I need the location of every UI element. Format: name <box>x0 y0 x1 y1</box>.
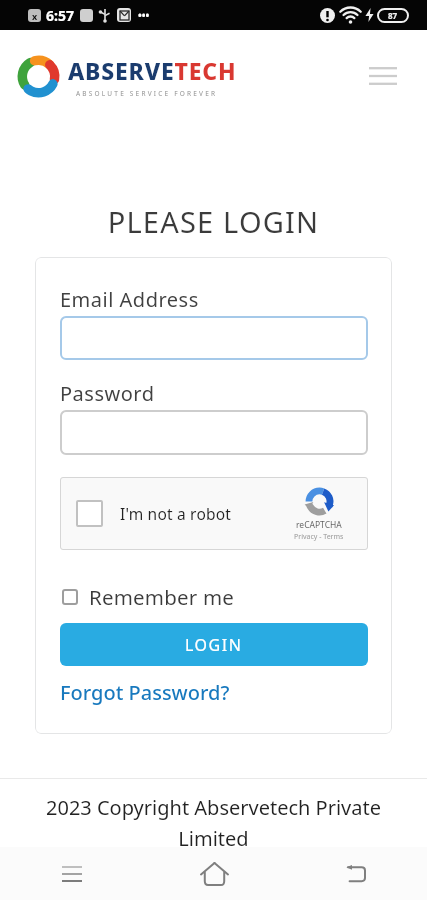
staticText: Remember me <box>89 583 235 611</box>
staticText: 2023 Copyright Abservetech Private Limit… <box>0 794 427 851</box>
staticText: LOGIN <box>185 634 243 656</box>
button[interactable] <box>60 410 368 455</box>
staticText: I'm not a robot <box>120 503 232 524</box>
button[interactable]: Forgot Password? <box>60 679 230 706</box>
staticText: Privacy - Terms <box>294 532 344 542</box>
button[interactable] <box>285 847 427 900</box>
staticText: ••• <box>138 8 150 22</box>
button[interactable] <box>60 316 368 360</box>
staticText: Email Address <box>60 286 199 313</box>
button[interactable] <box>369 67 397 85</box>
button[interactable]: Remember me <box>60 583 235 611</box>
staticText: ABSOLUTE SERVICE FOREVER <box>76 89 218 98</box>
staticText: x <box>32 10 38 22</box>
staticText: 6:57 <box>46 6 74 25</box>
staticText: ABSERVETECH <box>68 55 237 86</box>
staticText: 87 <box>388 10 398 21</box>
button[interactable] <box>76 500 103 527</box>
staticText: reCAPTCHA <box>296 519 342 531</box>
button[interactable] <box>143 847 285 900</box>
button[interactable]: LOGIN <box>60 623 368 666</box>
staticText: Password <box>60 380 155 407</box>
button[interactable] <box>0 847 143 900</box>
staticText: PLEASE LOGIN <box>0 202 427 241</box>
